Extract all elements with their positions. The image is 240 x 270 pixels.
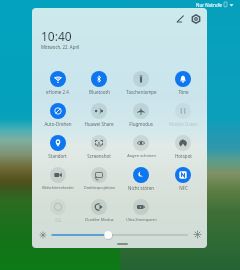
staticText: Auto-Drehen bbox=[44, 121, 72, 127]
staticText: Drahtlosprojektion bbox=[84, 185, 115, 190]
button[interactable]: Drahtlosprojektion bbox=[78, 159, 120, 191]
staticText: Huawei Share bbox=[84, 121, 114, 127]
button[interactable]: Bearbeiten bbox=[173, 12, 187, 26]
staticText: Mobile Daten bbox=[169, 121, 198, 127]
staticText: Hotspot bbox=[175, 153, 192, 159]
staticText: eHome 2.4 bbox=[46, 89, 69, 95]
staticText: Töne bbox=[178, 89, 189, 95]
staticText: Bildschirmrekorder bbox=[42, 185, 74, 190]
staticText: Mittwoch, 22. April bbox=[41, 44, 80, 50]
staticText: Nicht stören bbox=[128, 185, 154, 191]
staticText: Taschenlampe bbox=[126, 89, 157, 95]
button[interactable]: Auto-Drehen bbox=[37, 95, 78, 127]
staticText: Screenshot bbox=[87, 153, 111, 159]
button[interactable]: Augen schonen bbox=[120, 127, 162, 159]
button[interactable]: Nicht stören bbox=[120, 159, 162, 191]
button[interactable]: Helligkeit verringern bbox=[39, 231, 47, 239]
button[interactable]: Töne bbox=[162, 63, 204, 95]
button[interactable]: eHome 2.4 bbox=[37, 63, 78, 95]
button[interactable]: Flugmodus bbox=[120, 95, 162, 127]
staticText: Augen schonen bbox=[127, 153, 156, 158]
button[interactable]: Huawei Share bbox=[78, 95, 120, 127]
staticText: 10:40 bbox=[41, 28, 72, 44]
staticText: Dunkler Modus bbox=[85, 217, 114, 222]
staticText: 5G bbox=[55, 217, 61, 223]
button[interactable]: Standort bbox=[37, 127, 78, 159]
button[interactable]: 5G bbox=[37, 191, 78, 223]
button[interactable]: Einstellungen bbox=[189, 12, 203, 26]
button[interactable]: NFC bbox=[162, 159, 204, 191]
button[interactable]: Dunkler Modus bbox=[78, 191, 120, 223]
staticText: Nur Notrufe bbox=[196, 2, 222, 8]
button[interactable]: Bluetooth bbox=[78, 63, 120, 95]
staticText: Ultra-Stromsparen bbox=[126, 217, 157, 222]
button[interactable]: Taschenlampe bbox=[120, 63, 162, 95]
button[interactable]: Ultra-Stromsparen bbox=[120, 191, 162, 223]
button[interactable]: Helligkeit erhöhen bbox=[193, 230, 202, 239]
staticText: NFC bbox=[179, 185, 188, 191]
button[interactable]: Screenshot bbox=[78, 127, 120, 159]
staticText: Flugmodus bbox=[129, 121, 153, 127]
button[interactable]: Bildschirmrekorder bbox=[37, 159, 78, 191]
button[interactable]: Hotspot bbox=[162, 127, 204, 159]
staticText: Bluetooth bbox=[89, 89, 110, 95]
button[interactable]: Mobile Daten bbox=[162, 95, 204, 127]
staticText: Standort bbox=[48, 153, 67, 159]
